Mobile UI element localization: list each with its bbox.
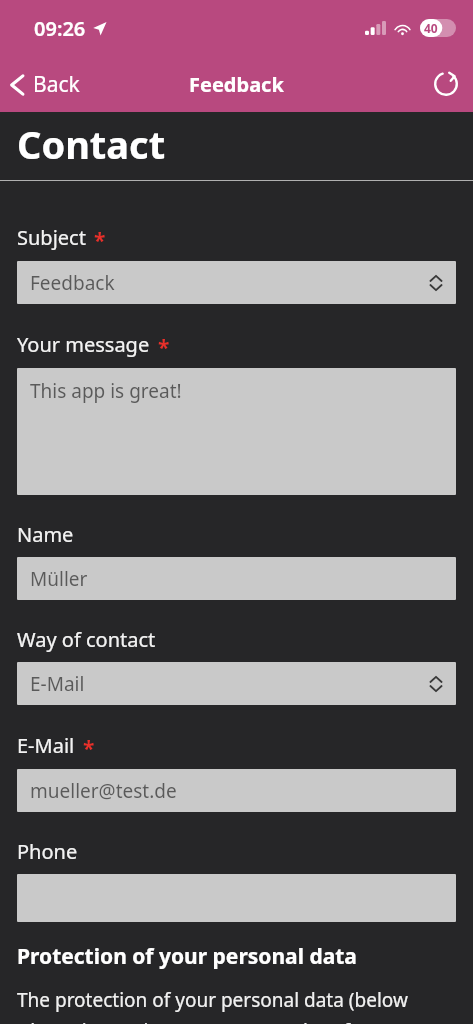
staticText: E-Mail xyxy=(17,732,75,759)
staticText: E-Mail xyxy=(30,671,85,697)
staticText: Phone xyxy=(17,838,78,865)
staticText: mueller@test.de xyxy=(30,778,177,804)
button[interactable]: Refresh xyxy=(419,61,473,107)
button[interactable]: E-Mail xyxy=(17,662,456,705)
button[interactable]: mueller@test.de xyxy=(17,769,456,812)
staticText: * xyxy=(94,226,106,255)
button[interactable]: Back xyxy=(0,64,92,105)
staticText: Müller xyxy=(30,566,88,592)
staticText: * xyxy=(83,734,95,763)
staticText: Back xyxy=(33,70,80,99)
staticText: Way of contact xyxy=(17,626,156,653)
staticText: The protection of your personal data (be… xyxy=(17,987,456,1024)
staticText: Contact xyxy=(17,118,166,170)
button[interactable]: Feedback xyxy=(17,261,456,304)
staticText: * xyxy=(158,333,170,362)
staticText: 40 xyxy=(424,20,438,36)
staticText: Name xyxy=(17,521,74,548)
staticText: Your message xyxy=(17,331,150,358)
button[interactable]: This app is great! xyxy=(17,368,456,495)
staticText: Feedback xyxy=(30,270,115,296)
staticText: Subject xyxy=(17,224,86,251)
staticText: This app is great! xyxy=(30,378,182,404)
button[interactable]: Müller xyxy=(17,557,456,600)
staticText: Feedback xyxy=(189,71,284,98)
staticText: 09:26 xyxy=(34,15,86,42)
staticText: Protection of your personal data xyxy=(17,942,357,971)
